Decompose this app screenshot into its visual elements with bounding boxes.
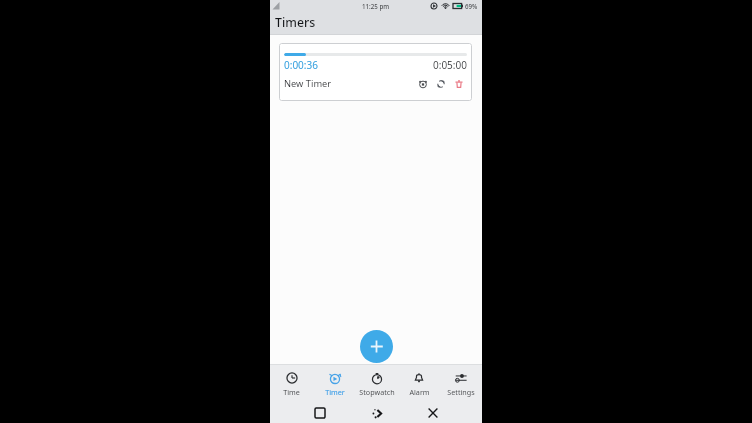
button[interactable]: Close [423, 403, 443, 423]
staticText: New Timer [284, 77, 332, 90]
staticText: 11:25 pm [362, 2, 390, 10]
staticText: 69% [465, 2, 478, 10]
button[interactable]: Home [366, 403, 386, 423]
button[interactable]: Timer [313, 365, 356, 403]
button[interactable]: Recent apps [310, 403, 330, 423]
staticText: Time [283, 387, 300, 397]
button[interactable]: Settings [440, 365, 482, 403]
button[interactable]: Stopwatch [356, 365, 398, 403]
staticText: Timer [325, 387, 345, 397]
button[interactable]: Time [270, 365, 313, 403]
button[interactable]: Pause timer [417, 78, 429, 90]
staticText: Alarm [409, 387, 430, 397]
button[interactable]: Alarm [398, 365, 440, 403]
staticText: Settings [447, 387, 475, 397]
button[interactable]: Reset timer [435, 78, 447, 90]
button[interactable]: Delete timer [453, 78, 465, 90]
button[interactable]: 0:00:36 [279, 43, 472, 101]
button[interactable]: Add timer [360, 330, 393, 363]
staticText: 0:05:00 [433, 58, 467, 72]
staticText: Timers [275, 14, 316, 31]
staticText: Stopwatch [359, 387, 395, 397]
staticText: 0:00:36 [284, 58, 318, 72]
